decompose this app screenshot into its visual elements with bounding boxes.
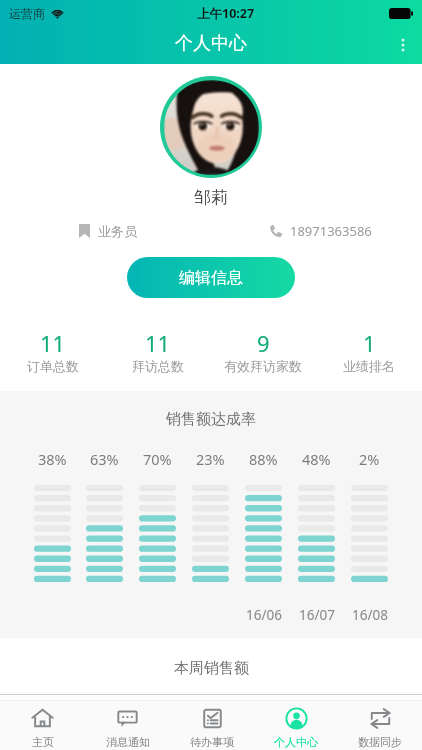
staticText: 16/06 bbox=[246, 606, 282, 624]
staticText: 11 bbox=[145, 328, 171, 358]
staticText: 消息通知 bbox=[106, 735, 150, 749]
button[interactable]: 11 bbox=[105, 328, 210, 374]
staticText: 18971363586 bbox=[290, 222, 372, 240]
staticText: 个人中心 bbox=[274, 735, 318, 749]
button[interactable]: 18971363586 bbox=[269, 222, 372, 240]
button[interactable]: 个人中心 bbox=[254, 701, 338, 750]
button[interactable]: 数据同步 bbox=[338, 701, 422, 750]
button[interactable]: 消息通知 bbox=[85, 701, 170, 750]
staticText: 1 bbox=[363, 328, 376, 358]
staticText: 销售额达成率 bbox=[166, 410, 256, 429]
button[interactable]: More options bbox=[384, 26, 422, 64]
button[interactable]: 11 bbox=[0, 328, 105, 374]
staticText: 本周销售额 bbox=[174, 659, 249, 678]
staticText: 数据同步 bbox=[358, 735, 402, 749]
staticText: 订单总数 bbox=[27, 358, 79, 374]
staticText: 上午10:27 bbox=[197, 5, 255, 22]
staticText: 23% bbox=[196, 449, 225, 469]
button[interactable]: 待办事项 bbox=[170, 701, 254, 750]
staticText: 48% bbox=[302, 449, 331, 469]
staticText: 主页 bbox=[32, 735, 54, 749]
staticText: 待办事项 bbox=[190, 735, 234, 749]
staticText: 运营商 bbox=[9, 6, 45, 21]
staticText: 11 bbox=[40, 328, 66, 358]
staticText: 编辑信息 bbox=[179, 268, 243, 288]
button[interactable]: 9 bbox=[210, 328, 316, 374]
staticText: 个人中心 bbox=[175, 32, 247, 55]
staticText: 拜访总数 bbox=[132, 358, 184, 374]
staticText: 16/08 bbox=[352, 606, 388, 624]
staticText: 业绩排名 bbox=[343, 358, 395, 374]
staticText: 9 bbox=[257, 328, 270, 358]
button[interactable]: 编辑信息 bbox=[127, 257, 295, 298]
staticText: 38% bbox=[38, 449, 67, 469]
staticText: 16/07 bbox=[299, 606, 335, 624]
button[interactable]: 1 bbox=[316, 328, 422, 374]
staticText: 70% bbox=[143, 449, 172, 469]
staticText: 有效拜访家数 bbox=[224, 358, 302, 374]
button[interactable]: 主页 bbox=[0, 701, 85, 750]
staticText: 邹莉 bbox=[194, 187, 228, 208]
staticText: 2% bbox=[359, 449, 380, 469]
staticText: 88% bbox=[249, 449, 278, 469]
button[interactable]: 业务员 bbox=[79, 223, 137, 239]
staticText: 业务员 bbox=[98, 223, 137, 239]
staticText: 63% bbox=[90, 449, 119, 469]
